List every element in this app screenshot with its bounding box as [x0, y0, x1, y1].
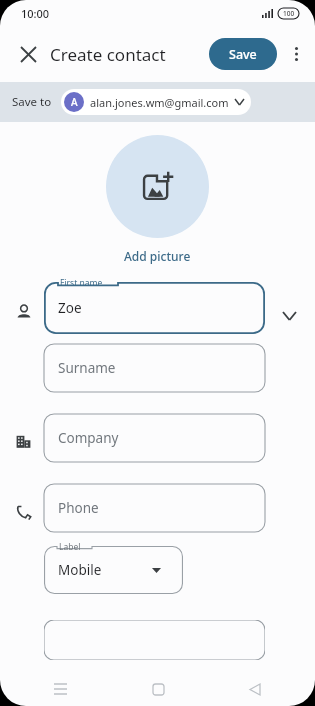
staticText: A: [71, 95, 78, 109]
staticText: 10:00: [21, 6, 50, 21]
staticText: Zoe: [58, 299, 82, 317]
staticText: alan.jones.wm@gmail.com: [90, 95, 229, 110]
staticText: Surname: [58, 359, 116, 377]
staticText: First name: [60, 277, 103, 289]
staticText: 100: [283, 9, 295, 18]
button[interactable]: Company: [44, 414, 265, 462]
staticText: Phone: [58, 499, 99, 517]
button[interactable]: Recent apps: [44, 673, 76, 705]
staticText: Create contact: [50, 43, 166, 66]
button[interactable]: Close: [8, 34, 48, 74]
button[interactable]: Save: [209, 38, 277, 70]
staticText: Mobile: [58, 561, 102, 579]
button[interactable]: Expand name fields: [275, 302, 303, 330]
staticText: Save: [229, 46, 257, 63]
button[interactable]: Label: [44, 546, 183, 594]
staticText: Save to: [12, 94, 52, 110]
button[interactable]: Back: [239, 673, 271, 705]
button[interactable]: More options: [279, 37, 313, 71]
button[interactable]: [44, 620, 265, 660]
button[interactable]: A: [61, 89, 251, 115]
button[interactable]: Phone: [44, 484, 265, 532]
staticText: Label: [59, 541, 81, 553]
staticText: Company: [58, 429, 119, 447]
button[interactable]: Add picture: [106, 135, 209, 238]
button[interactable]: Home: [142, 673, 174, 705]
button[interactable]: Surname: [44, 344, 265, 392]
button[interactable]: Add picture: [124, 248, 191, 264]
button[interactable]: First name: [44, 282, 265, 334]
